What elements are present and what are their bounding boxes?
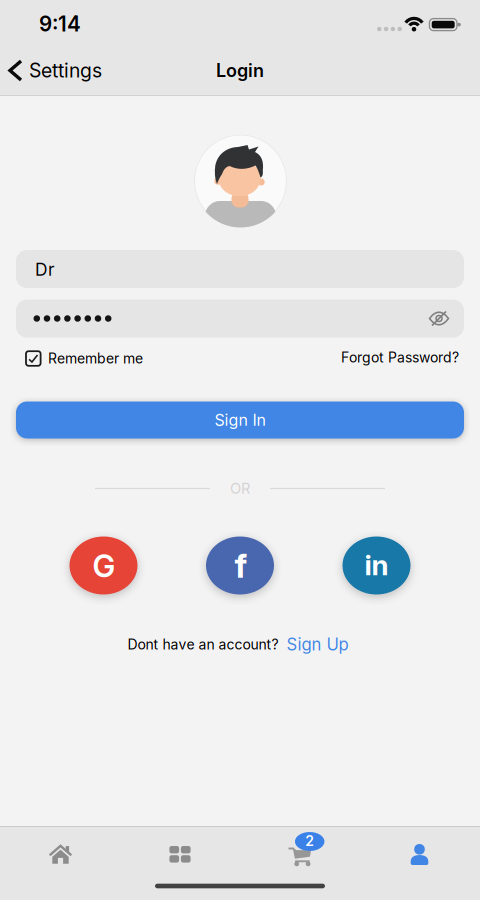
staticText: Sign In — [214, 410, 265, 430]
staticText: 9:14 — [39, 11, 81, 36]
staticText: in — [364, 548, 388, 582]
button[interactable]: Sign In — [16, 401, 464, 438]
button[interactable]: Username — [16, 250, 464, 288]
button[interactable]: Cart, 2 items — [275, 821, 337, 877]
staticText: 2 — [305, 832, 314, 849]
staticText: Sign Up — [286, 634, 348, 655]
button[interactable]: Sign in with Facebook — [206, 536, 274, 594]
staticText: Settings — [29, 59, 102, 82]
button[interactable]: Remember me — [26, 346, 201, 370]
button[interactable]: Forgot Password? — [299, 345, 459, 369]
button[interactable]: Sign in with LinkedIn — [342, 536, 410, 594]
button[interactable]: Sign in with Google — [69, 536, 137, 594]
button[interactable]: Back to Settings — [10, 50, 140, 90]
staticText: Login — [216, 60, 264, 81]
staticText: Dont have an account? — [127, 636, 278, 653]
button[interactable]: Password — [16, 299, 464, 337]
staticText: OR — [230, 480, 250, 497]
button[interactable]: Profile — [384, 830, 454, 878]
staticText: Forgot Password? — [341, 349, 459, 366]
staticText: G — [92, 547, 115, 584]
staticText: f — [234, 545, 247, 586]
button[interactable]: Home — [25, 830, 95, 878]
button[interactable]: Categories — [145, 830, 215, 878]
staticText: Remember me — [48, 350, 143, 367]
staticText: Dr — [35, 259, 55, 280]
button[interactable]: Sign Up — [286, 634, 348, 655]
